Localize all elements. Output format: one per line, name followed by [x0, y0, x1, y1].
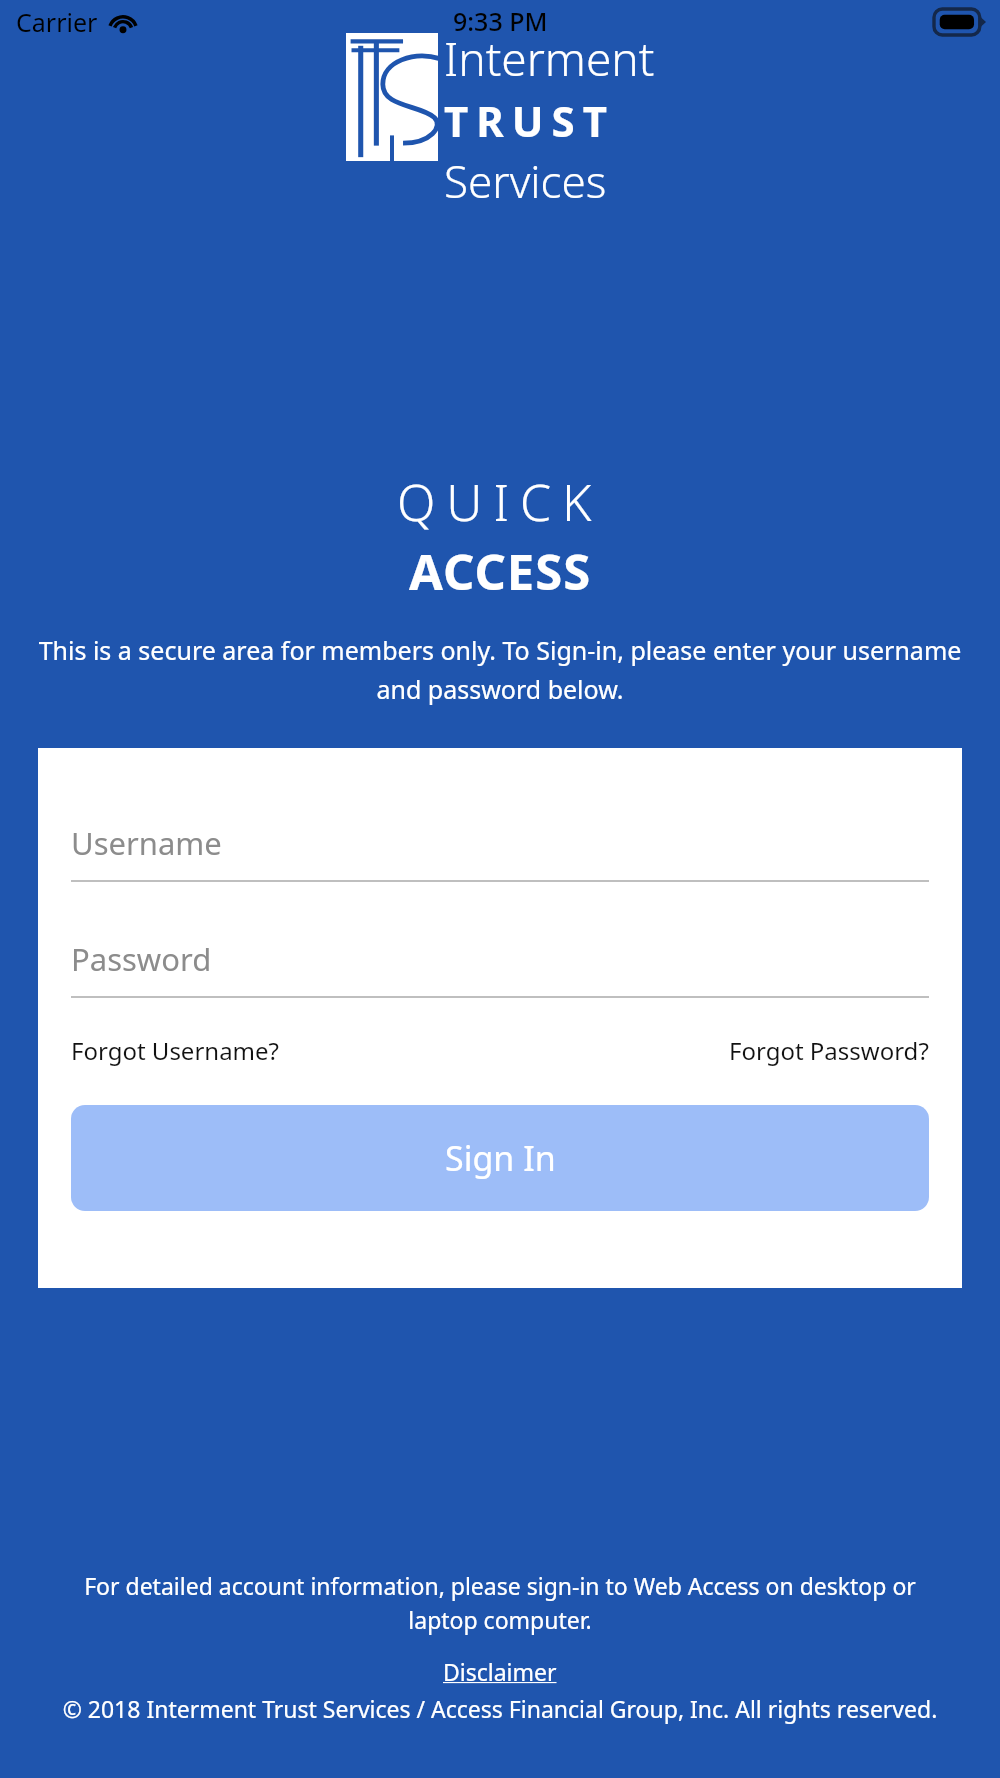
staticText: Forgot Password?: [729, 1034, 929, 1067]
staticText: Forgot Username?: [71, 1034, 280, 1067]
staticText: Username: [71, 822, 222, 864]
button[interactable]: Username: [71, 804, 929, 882]
button[interactable]: Password: [71, 920, 929, 998]
staticText: Services: [444, 151, 607, 211]
staticText: Password: [71, 938, 212, 980]
staticText: QUICK: [397, 468, 603, 536]
staticText: This is a secure area for members only. …: [32, 633, 968, 706]
staticText: Interment: [444, 27, 655, 90]
staticText: ACCESS: [409, 538, 592, 605]
staticText: 9:33 PM: [453, 4, 548, 38]
button[interactable]: Sign In: [71, 1105, 929, 1211]
button[interactable]: Disclaimer: [443, 1656, 557, 1687]
staticText: © 2018 Interment Trust Services / Access…: [52, 1693, 948, 1724]
staticText: Sign In: [445, 1135, 556, 1181]
button[interactable]: Forgot Password?: [729, 1034, 929, 1067]
staticText: For detailed account information, please…: [52, 1570, 948, 1636]
staticText: TRUST: [444, 92, 615, 149]
staticText: Carrier: [16, 5, 98, 39]
button[interactable]: Forgot Username?: [71, 1034, 280, 1067]
staticText: Disclaimer: [443, 1656, 557, 1687]
